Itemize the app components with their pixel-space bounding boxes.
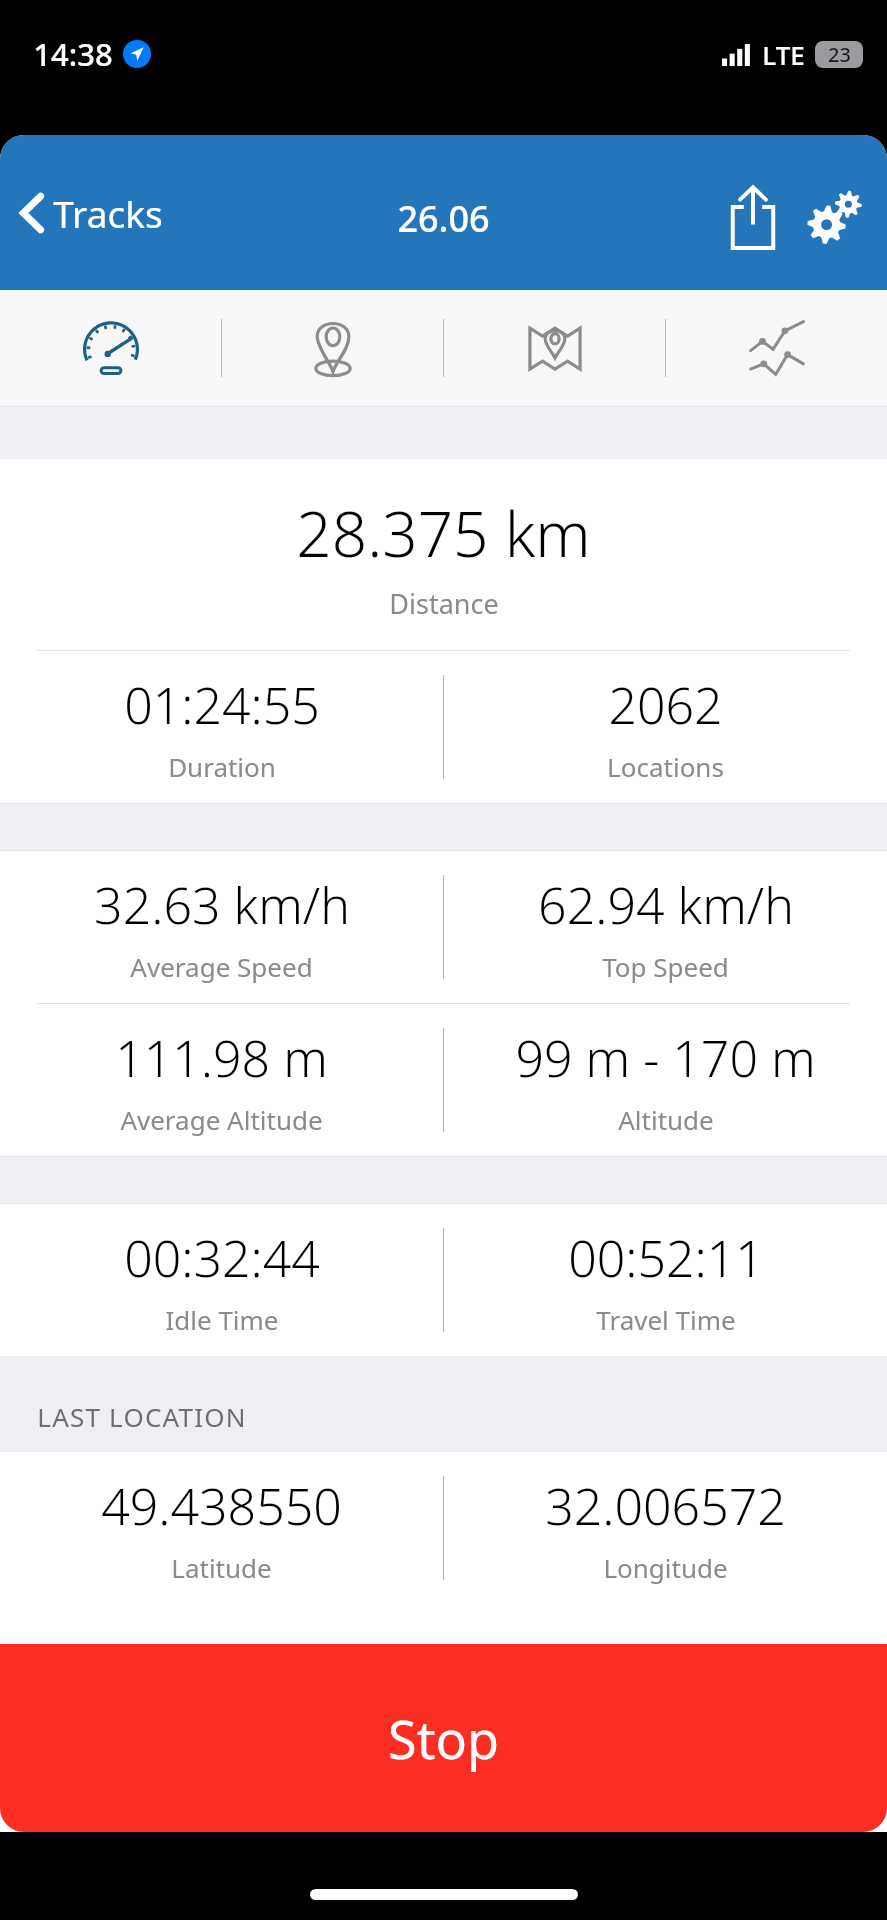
staticText: Average Altitude bbox=[120, 1102, 323, 1137]
button[interactable]: Map bbox=[444, 290, 665, 406]
button[interactable]: 32.63 km/h bbox=[0, 851, 443, 1003]
staticText: Tracks bbox=[53, 188, 163, 238]
button[interactable]: Chart bbox=[666, 290, 887, 406]
staticText: Altitude bbox=[618, 1102, 714, 1137]
button[interactable]: 2062 bbox=[444, 651, 887, 803]
button[interactable]: 00:52:11 bbox=[444, 1204, 887, 1356]
staticText: 32.006572 bbox=[545, 1472, 786, 1540]
staticText: 62.94 km/h bbox=[538, 871, 794, 939]
staticText: Stop bbox=[388, 1703, 499, 1774]
staticText: Idle Time bbox=[165, 1302, 279, 1337]
button[interactable]: 111.98 m bbox=[0, 1004, 443, 1156]
staticText: Duration bbox=[168, 749, 276, 784]
staticText: 23 bbox=[828, 41, 851, 68]
staticText: 14:38 bbox=[33, 33, 113, 75]
staticText: 2062 bbox=[608, 671, 723, 739]
staticText: Distance bbox=[389, 585, 499, 622]
staticText: Locations bbox=[607, 749, 724, 784]
staticText: Travel Time bbox=[596, 1302, 736, 1337]
button[interactable]: Tracks bbox=[12, 178, 171, 248]
staticText: 49.438550 bbox=[101, 1472, 342, 1540]
staticText: 28.375 km bbox=[296, 491, 591, 575]
staticText: Average Speed bbox=[130, 949, 313, 984]
button[interactable]: 49.438550 bbox=[0, 1452, 443, 1604]
staticText: 99 m - 170 m bbox=[515, 1024, 816, 1092]
staticText: 01:24:55 bbox=[124, 671, 320, 739]
button[interactable]: Stop bbox=[0, 1644, 887, 1832]
staticText: 26.06 bbox=[397, 194, 490, 243]
button[interactable]: 00:32:44 bbox=[0, 1204, 443, 1356]
staticText: LTE bbox=[762, 37, 805, 72]
staticText: Longitude bbox=[603, 1550, 728, 1585]
staticText: 00:32:44 bbox=[124, 1224, 320, 1292]
button[interactable]: Speed bbox=[0, 290, 221, 406]
button[interactable]: Location bbox=[222, 290, 443, 406]
staticText: 00:52:11 bbox=[568, 1224, 764, 1292]
staticText: Top Speed bbox=[602, 949, 729, 984]
staticText: Latitude bbox=[171, 1550, 272, 1585]
staticText: 32.63 km/h bbox=[94, 871, 350, 939]
button[interactable]: 62.94 km/h bbox=[444, 851, 887, 1003]
button[interactable]: 32.006572 bbox=[444, 1452, 887, 1604]
staticText: 111.98 m bbox=[115, 1024, 328, 1092]
button[interactable]: 99 m - 170 m bbox=[444, 1004, 887, 1156]
button[interactable]: 01:24:55 bbox=[0, 651, 443, 803]
button[interactable]: Share bbox=[713, 177, 793, 257]
staticText: LAST LOCATION bbox=[37, 1399, 247, 1434]
button[interactable]: Settings bbox=[793, 177, 873, 257]
